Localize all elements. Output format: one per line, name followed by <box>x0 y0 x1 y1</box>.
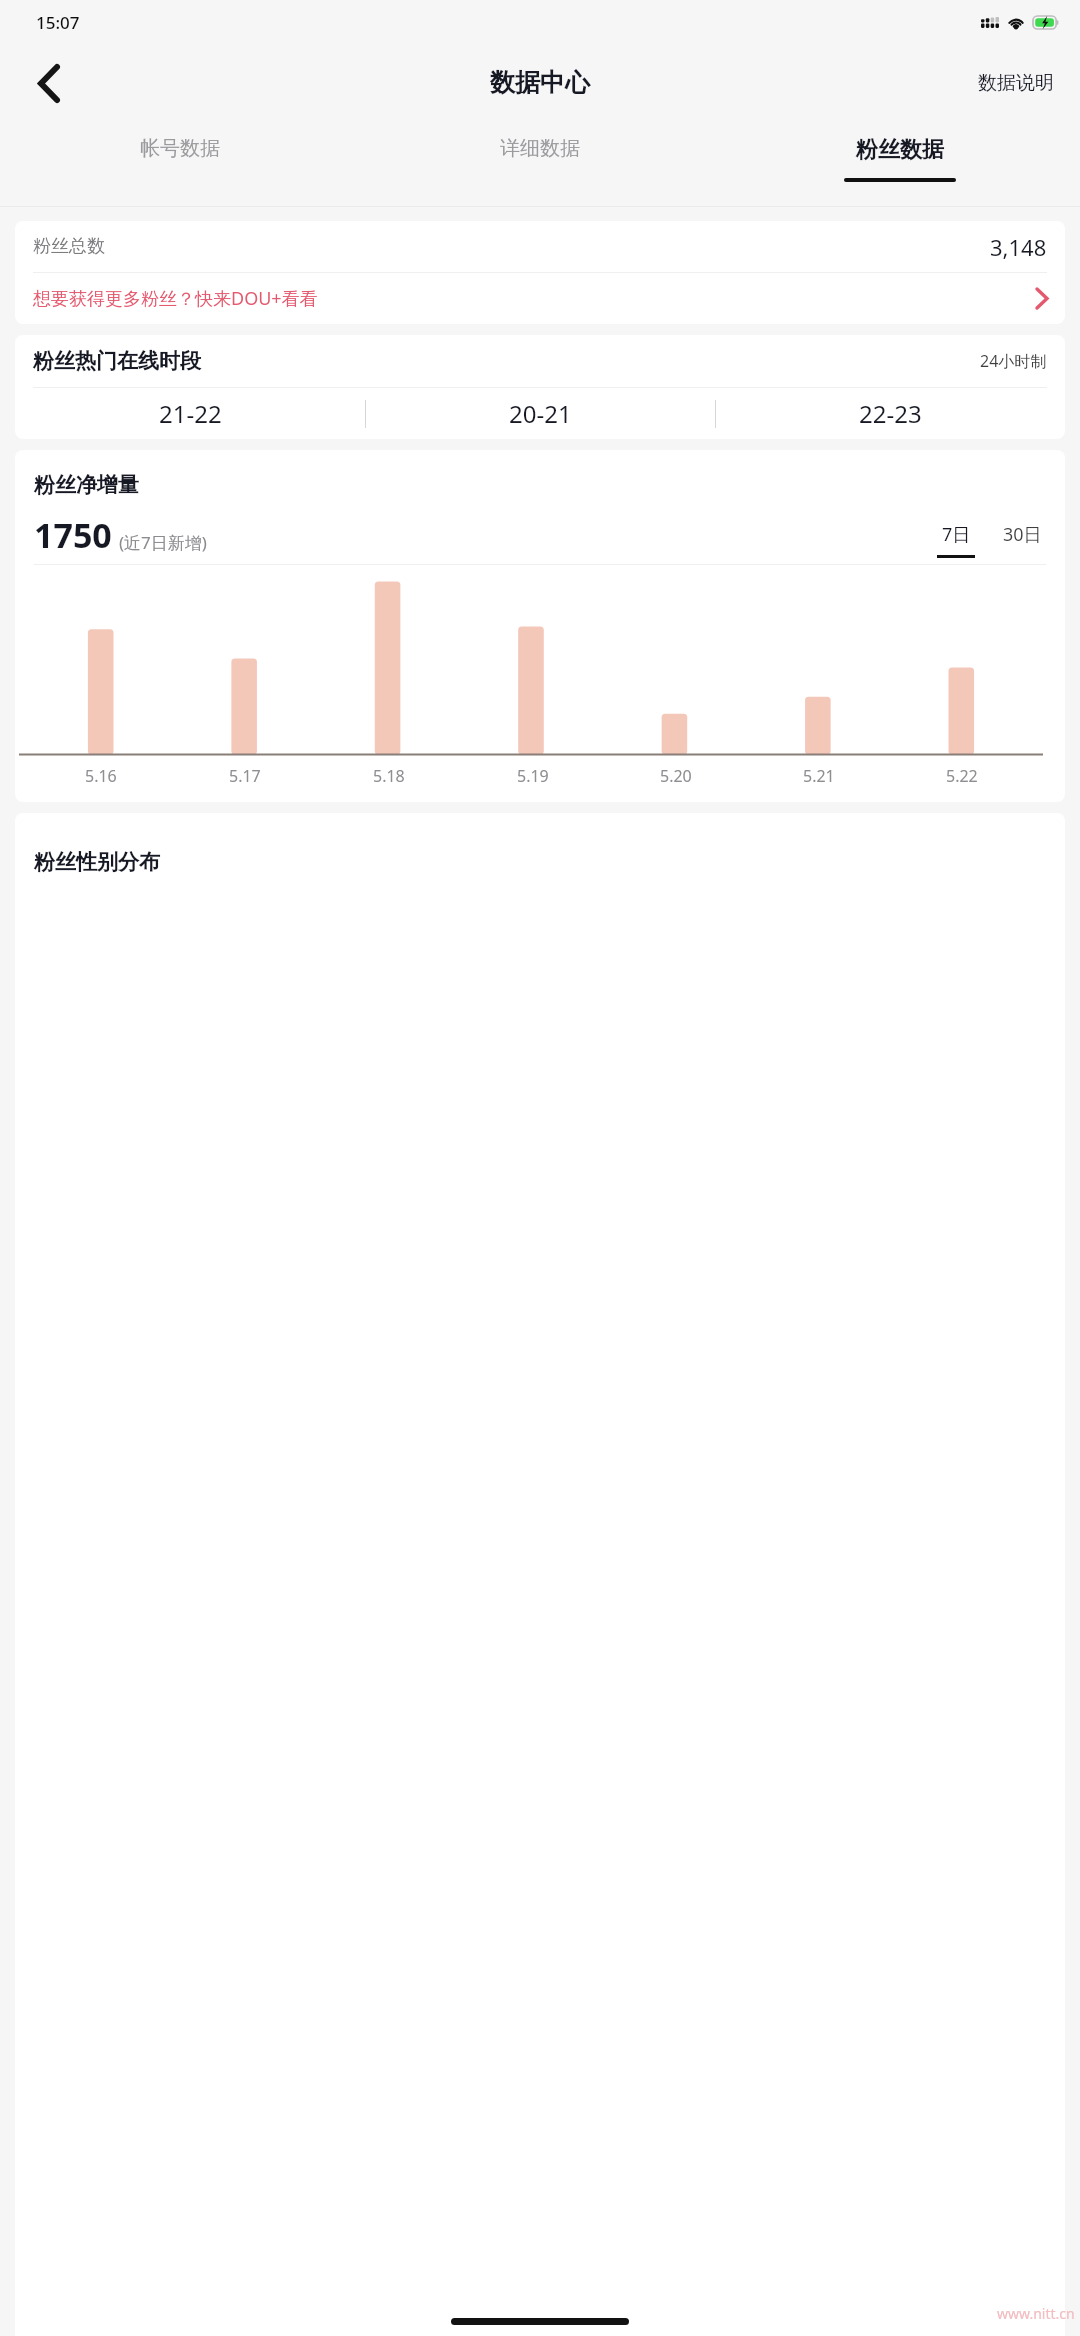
button[interactable]: Back <box>20 54 78 112</box>
staticText: 粉丝净增量 <box>34 472 139 498</box>
staticText: 粉丝热门在线时段 <box>33 348 201 374</box>
staticText: 数据说明 <box>978 71 1054 95</box>
staticText: 20-21 <box>509 397 572 430</box>
button[interactable]: 7日 <box>933 522 979 558</box>
button[interactable]: 30日 <box>999 522 1046 558</box>
staticText: 30日 <box>1003 522 1042 547</box>
staticText: 3,148 <box>990 232 1047 262</box>
staticText: (近7日新增) <box>119 531 207 554</box>
button[interactable]: 粉丝数据 <box>720 120 1080 207</box>
button[interactable]: 数据说明 <box>972 63 1060 103</box>
staticText: 5.16 <box>85 765 117 787</box>
staticText: 5.18 <box>373 765 405 787</box>
button[interactable]: 帐号数据 <box>0 120 360 207</box>
staticText: 15:07 <box>36 11 80 34</box>
button[interactable]: 想要获得更多粉丝？快来DOU+看看 <box>15 273 1065 324</box>
staticText: 详细数据 <box>500 136 580 161</box>
staticText: 22-23 <box>859 397 922 430</box>
staticText: 1750 <box>34 512 112 558</box>
staticText: 21-22 <box>159 397 222 430</box>
staticText: 7日 <box>942 522 971 547</box>
staticText: 粉丝性别分布 <box>34 849 160 875</box>
staticText: 5.22 <box>946 765 978 787</box>
button[interactable]: 详细数据 <box>360 120 720 207</box>
staticText: 24小时制 <box>980 350 1047 372</box>
staticText: 数据中心 <box>490 67 590 98</box>
staticText: 帐号数据 <box>140 136 220 161</box>
staticText: 5.19 <box>517 765 549 787</box>
staticText: 5.20 <box>660 765 692 787</box>
staticText: 粉丝总数 <box>33 235 105 258</box>
staticText: 5.17 <box>229 765 261 787</box>
staticText: 想要获得更多粉丝？快来DOU+看看 <box>33 286 318 311</box>
staticText: www.nitt.cn <box>997 2304 1075 2323</box>
staticText: 粉丝数据 <box>856 136 944 164</box>
staticText: 5.21 <box>803 765 835 787</box>
